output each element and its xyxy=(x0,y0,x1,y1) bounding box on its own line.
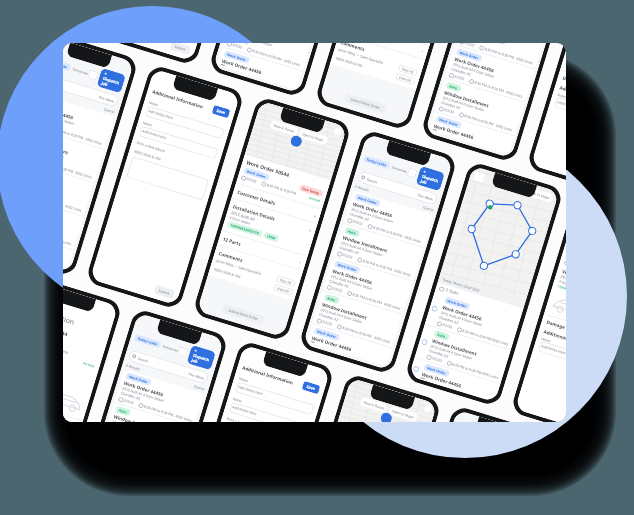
staticText: 5 Results xyxy=(355,184,370,193)
button[interactable]: App screen preview xyxy=(106,43,256,61)
staticText: 8:30 PM to 8:30 PM xyxy=(63,160,74,174)
staticText: Work Order xyxy=(459,50,479,60)
button[interactable]: Add Notes Here xyxy=(229,402,308,422)
staticText: Notes xyxy=(557,92,566,100)
button[interactable]: Search xyxy=(128,349,209,385)
button[interactable]: App screen preview xyxy=(63,43,566,422)
staticText: Installation Details xyxy=(232,203,276,222)
staticText: 2012 Audi A4 4 Door Sedan xyxy=(421,377,463,390)
button[interactable]: + Dispatch Job xyxy=(415,166,445,191)
staticText: 4 Door Sedan xyxy=(558,278,566,290)
button[interactable]: Save xyxy=(212,105,230,118)
staticText: CPRD xyxy=(266,233,276,241)
button[interactable]: 12 Parts xyxy=(339,43,429,59)
button[interactable]: Back xyxy=(63,296,109,325)
staticText: Work Order xyxy=(438,117,459,127)
staticText: 2012 Audi A4 4 Door Sedan xyxy=(430,343,473,361)
staticText: 3/2/22 xyxy=(342,252,354,260)
staticText: Chandler, AZ xyxy=(349,211,370,222)
staticText: 2012 Audi A4 4 Door Sedan xyxy=(122,385,165,403)
staticText: 5 Results xyxy=(126,363,141,372)
button[interactable]: App screen preview xyxy=(63,43,134,272)
staticText: NEED SIGN & VIN xyxy=(133,148,162,161)
button[interactable]: Filter xyxy=(87,69,99,81)
staticText: 3/2/22 xyxy=(444,107,456,115)
button[interactable]: View All xyxy=(395,73,415,85)
staticText: 8:30 PM to 8:30 PM xyxy=(63,341,69,355)
button[interactable]: App screen preview xyxy=(393,410,543,422)
button[interactable]: View All xyxy=(273,284,293,296)
staticText: 8:30 PM to 8:30 PM xyxy=(143,404,174,417)
button[interactable]: App screen preview xyxy=(63,280,118,422)
button[interactable]: App screen preview xyxy=(74,313,224,422)
button[interactable]: App screen preview xyxy=(90,69,240,305)
staticText: 8:30 PM to 8:30 PM xyxy=(342,325,373,339)
button[interactable]: Close xyxy=(473,171,485,183)
button[interactable]: Open in Maps xyxy=(298,128,328,145)
button[interactable]: Add Notes Here xyxy=(139,126,218,159)
button[interactable]: Open in Maps xyxy=(524,186,554,203)
button[interactable]: View in Route xyxy=(269,120,299,136)
staticText: 2012 Audi A4 xyxy=(230,210,256,222)
button[interactable]: Submit xyxy=(153,285,175,299)
staticText: v xyxy=(309,227,312,233)
staticText: Vehicle xyxy=(561,268,566,279)
staticText: Add Notes Here xyxy=(148,108,174,120)
staticText: Chandler, AZ xyxy=(451,66,471,77)
button[interactable]: Filter xyxy=(177,346,189,358)
button[interactable]: App screen preview xyxy=(213,43,363,93)
button[interactable]: Submit Work Order xyxy=(343,93,387,114)
button[interactable]: App screen preview xyxy=(515,199,566,422)
staticText: Damage Report xyxy=(546,319,566,335)
staticText: Queue xyxy=(193,383,205,391)
button[interactable]: Add Notes Here xyxy=(235,381,315,415)
staticText: Today's Jobs xyxy=(137,336,158,347)
staticText: Pre-Inspection xyxy=(63,304,76,328)
button[interactable]: App screen preview xyxy=(303,134,453,370)
button[interactable]: App screen preview xyxy=(319,43,469,126)
staticText: Additional Information xyxy=(152,88,204,109)
button[interactable]: Open in Maps xyxy=(388,405,418,422)
button[interactable]: Save xyxy=(302,381,320,394)
button[interactable]: Search xyxy=(357,170,438,206)
staticText: Auto xyxy=(437,332,447,339)
button[interactable]: App screen preview xyxy=(180,345,330,422)
staticText: 2012 Audi A4 4 Door Sedan xyxy=(330,273,374,291)
staticText: Notes xyxy=(142,120,153,127)
button[interactable]: View in Route xyxy=(359,397,389,413)
staticText: 3/2/22 xyxy=(442,322,454,330)
button[interactable]: App screen preview xyxy=(287,378,437,422)
button[interactable]: Add Notes Here xyxy=(145,105,225,139)
button[interactable]: App screen preview xyxy=(531,43,566,191)
staticText: 4392 Units xyxy=(75,170,92,179)
staticText: Work Order 44456 xyxy=(421,371,462,389)
button[interactable]: + Dispatch Job xyxy=(186,345,216,370)
staticText: 2012 Audi A4 4 Door Sedan xyxy=(452,61,496,79)
button[interactable]: App screen preview xyxy=(409,166,559,402)
button[interactable]: + Dispatch Job xyxy=(96,68,126,93)
staticText: Today's Jobs xyxy=(63,59,68,70)
button[interactable]: Search xyxy=(63,72,120,108)
staticText: Comments xyxy=(340,43,366,52)
button[interactable]: Submit xyxy=(169,43,191,55)
staticText: 4392 Units xyxy=(283,58,301,67)
staticText: Chandler, AZ xyxy=(319,312,339,322)
staticText: 4392 Units xyxy=(85,136,103,146)
button[interactable]: Customer Details xyxy=(232,184,322,223)
staticText: 8:30 PM to 8:30 PM xyxy=(63,127,84,140)
button[interactable]: App screen preview xyxy=(425,43,566,158)
staticText: Chandler, AZ xyxy=(439,314,459,325)
button[interactable]: View All xyxy=(276,275,296,287)
staticText: Open in Maps xyxy=(302,131,325,143)
button[interactable]: View All xyxy=(398,64,418,76)
staticText: 8:30 PM to 8:30 PM xyxy=(452,361,483,375)
button[interactable]: 12 Parts xyxy=(217,231,307,270)
staticText: NEED SIGN & VIN xyxy=(213,266,241,279)
staticText: 8:30 PM to 8:30 PM xyxy=(252,48,283,62)
button[interactable]: App screen preview xyxy=(197,101,347,337)
button[interactable]: Add Notes Here xyxy=(538,341,566,375)
button[interactable]: Submit Work Order xyxy=(221,304,265,325)
button[interactable]: Filter xyxy=(406,167,418,179)
button[interactable]: Add Notes Here xyxy=(554,97,566,131)
staticText: View All xyxy=(279,277,293,286)
